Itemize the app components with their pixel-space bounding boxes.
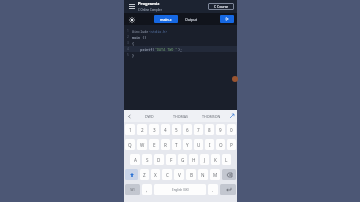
staticText: X <box>154 172 157 178</box>
button[interactable]: Previous <box>124 110 134 122</box>
button[interactable]: Q <box>125 139 135 150</box>
button[interactable]: Menu <box>127 2 136 11</box>
button[interactable]: T <box>172 139 181 150</box>
staticText: , <box>146 187 148 193</box>
staticText: DWD <box>145 114 154 119</box>
staticText: 7 <box>197 127 200 133</box>
staticText: 2 <box>127 35 129 39</box>
button[interactable]: 6 <box>183 124 192 135</box>
button[interactable]: A <box>130 154 140 165</box>
staticText: 3 <box>127 41 129 45</box>
button[interactable]: 5 <box>172 124 181 135</box>
button[interactable]: W <box>137 139 147 150</box>
staticText: printf( <box>132 47 155 52</box>
button[interactable]: 2 <box>137 124 147 135</box>
button[interactable]: C <box>162 169 172 180</box>
button[interactable]: O <box>216 139 225 150</box>
button[interactable]: 0 <box>227 124 236 135</box>
staticText: Q <box>128 142 132 148</box>
staticText: . <box>212 187 214 193</box>
button[interactable]: 7 <box>194 124 203 135</box>
button[interactable]: J <box>200 154 209 165</box>
button[interactable]: D <box>154 154 164 165</box>
button[interactable]: THOMSON <box>196 110 227 122</box>
button[interactable]: Output <box>180 15 202 23</box>
button[interactable]: !#1 <box>125 184 140 195</box>
button[interactable]: main.c <box>154 15 178 23</box>
button[interactable]: V <box>174 169 184 180</box>
staticText: A <box>134 157 137 163</box>
button[interactable]: 1 <box>125 124 135 135</box>
button[interactable]: Run <box>220 15 234 23</box>
staticText: 5 <box>175 127 178 133</box>
staticText: THOMSON <box>202 114 221 119</box>
staticText: R <box>164 142 167 148</box>
staticText: 1 <box>127 29 129 33</box>
staticText: 0 <box>230 127 233 133</box>
button[interactable]: Y <box>183 139 192 150</box>
staticText: 5 <box>127 53 129 57</box>
button[interactable]: B <box>186 169 196 180</box>
staticText: Y <box>186 142 189 148</box>
staticText: 3 <box>153 127 156 133</box>
staticText: D <box>157 157 161 163</box>
staticText: J <box>204 157 206 163</box>
button[interactable]: 8 <box>205 124 214 135</box>
staticText: H <box>192 157 196 163</box>
button[interactable]: F <box>166 154 176 165</box>
staticText: L <box>225 157 228 163</box>
button[interactable]: Shift <box>125 169 138 180</box>
button[interactable]: S <box>142 154 152 165</box>
staticText: <stdio.h> <box>149 29 168 34</box>
button[interactable]: M <box>210 169 220 180</box>
button[interactable]: K <box>211 154 220 165</box>
button[interactable]: 4 <box>161 124 170 135</box>
button[interactable]: H <box>189 154 198 165</box>
staticText: 2 <box>141 127 144 133</box>
button[interactable]: THOMAS <box>165 110 196 122</box>
button[interactable]: 9 <box>216 124 225 135</box>
button[interactable]: I <box>205 139 214 150</box>
button[interactable]: L <box>222 154 231 165</box>
staticText: { <box>132 41 135 46</box>
button[interactable]: U <box>194 139 203 150</box>
staticText: 1 <box>129 127 132 133</box>
staticText: C Course <box>214 4 229 9</box>
staticText: main () <box>132 35 147 40</box>
staticText: C Online Compiler <box>138 8 162 12</box>
staticText: !#1 <box>130 187 136 192</box>
staticText: W <box>140 142 145 148</box>
button[interactable]: 3 <box>149 124 159 135</box>
button[interactable]: R <box>161 139 170 150</box>
staticText: C <box>166 172 169 178</box>
staticText: O <box>219 142 223 148</box>
button[interactable]: . <box>208 184 218 195</box>
button[interactable]: Theme <box>127 15 136 24</box>
button[interactable]: Backspace <box>222 169 236 180</box>
staticText: 6 <box>186 127 189 133</box>
button[interactable]: P <box>227 139 236 150</box>
staticText: U <box>197 142 201 148</box>
button[interactable]: X <box>151 169 160 180</box>
button[interactable]: , <box>142 184 152 195</box>
button[interactable]: DWD <box>134 110 165 122</box>
staticText: V <box>178 172 181 178</box>
staticText: Programiz <box>138 1 160 7</box>
button[interactable]: C Course <box>208 3 234 10</box>
button[interactable]: English (UK) <box>154 184 206 195</box>
staticText: F <box>170 157 173 163</box>
button[interactable]: G <box>178 154 187 165</box>
staticText: ); <box>178 47 183 52</box>
button[interactable]: N <box>198 169 208 180</box>
staticText: THOMAS <box>173 114 188 119</box>
staticText: main.c <box>160 17 172 22</box>
button[interactable]: Z <box>140 169 149 180</box>
button[interactable]: Expand <box>227 110 237 122</box>
staticText: P <box>230 142 233 148</box>
staticText: Z <box>143 172 146 178</box>
staticText: 4 <box>127 47 129 51</box>
button[interactable]: E <box>149 139 159 150</box>
button[interactable]: Enter <box>220 184 236 195</box>
staticText: G <box>181 157 185 163</box>
staticText: "DATA TWO " <box>155 47 178 52</box>
